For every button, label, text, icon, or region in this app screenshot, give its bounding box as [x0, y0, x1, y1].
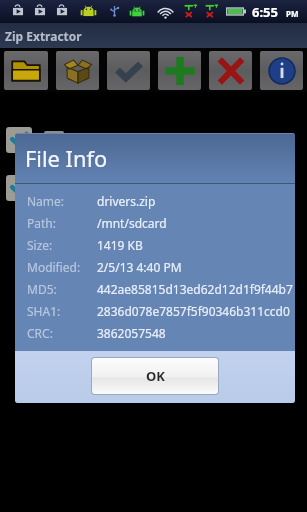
staticText: /mnt/sdcard: [97, 215, 167, 231]
staticText: Zip Extractor: [5, 28, 82, 44]
staticText: File Info: [25, 144, 108, 174]
staticText: Size:: [27, 237, 97, 253]
staticText: CRC:: [27, 325, 97, 341]
staticText: MD5:: [27, 281, 97, 297]
staticText: drivers.zip: [97, 193, 156, 209]
staticText: Modified:: [27, 259, 97, 275]
staticText: 2836d078e7857f5f90346b311ccd0: [97, 303, 290, 319]
staticText: OK: [146, 367, 165, 385]
staticText: PM: [286, 8, 299, 19]
button[interactable]: drivers.zip: [0, 175, 307, 201]
staticText: 1419 KB: [97, 237, 143, 253]
staticText: 2/5/13 4:40 PM: [97, 259, 182, 275]
staticText: 442ae85815d13ed62d12d1f9f44b7: [97, 281, 293, 297]
staticText: Path:: [27, 215, 97, 231]
staticText: drivers.zip: [74, 180, 133, 196]
staticText: drivers.zip: [74, 132, 133, 148]
staticText: 3862057548: [97, 325, 166, 341]
button[interactable]: Info: [260, 51, 303, 90]
staticText: SHA1:: [27, 303, 97, 319]
button[interactable]: drivers.zip: [0, 127, 307, 153]
button[interactable]: OK: [92, 358, 218, 394]
staticText: 6:55: [252, 3, 278, 21]
button[interactable]: Open folder: [4, 51, 48, 90]
button[interactable]: Archive: [56, 51, 99, 90]
button[interactable]: Select all: [107, 51, 150, 90]
button[interactable]: Delete: [209, 51, 252, 90]
button[interactable]: Add: [158, 51, 201, 90]
staticText: Name:: [27, 193, 97, 209]
